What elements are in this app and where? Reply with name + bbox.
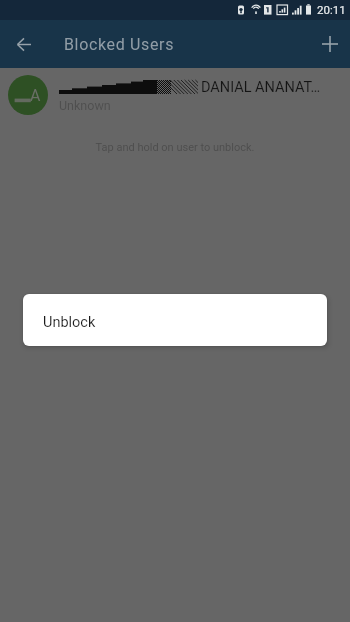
button[interactable]: Add blocked user bbox=[316, 30, 344, 58]
button[interactable]: A bbox=[0, 68, 350, 123]
staticText: Tap and hold on user to unblock. bbox=[0, 141, 350, 154]
staticText: Blocked Users bbox=[64, 35, 175, 54]
staticText: Unblock bbox=[43, 314, 96, 331]
staticText: DANIAL ANANAT… bbox=[201, 79, 321, 96]
button[interactable]: Navigate up bbox=[10, 30, 38, 58]
staticText: 20:11 bbox=[317, 3, 346, 16]
staticText: Unknown bbox=[59, 98, 111, 113]
button[interactable]: Unblock bbox=[23, 294, 327, 346]
staticText: A bbox=[30, 86, 41, 105]
